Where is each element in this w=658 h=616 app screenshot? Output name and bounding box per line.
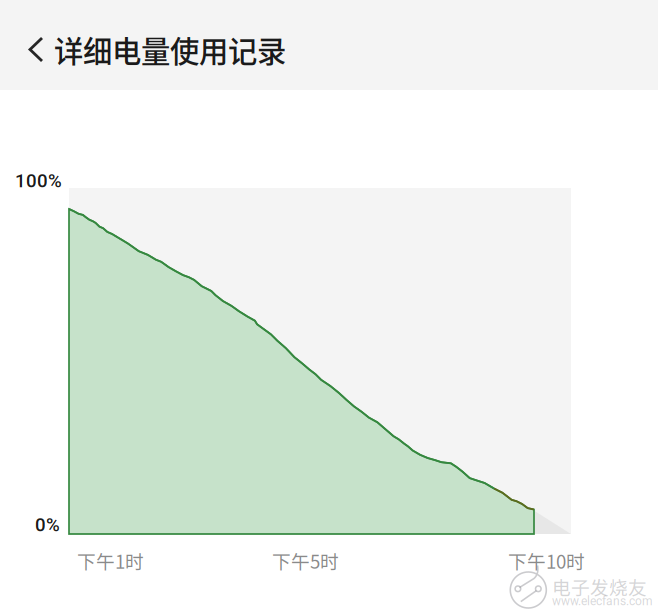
staticText: 详细电量使用记录 (54, 28, 286, 71)
staticText: 100% (15, 170, 62, 192)
staticText: 0% (35, 514, 60, 536)
staticText: www.elecfans.com (552, 594, 653, 608)
staticText: 下午1时 (77, 547, 144, 574)
staticText: 下午10时 (508, 547, 585, 574)
staticText: 电子发烧友 (552, 573, 647, 600)
button[interactable]: 详细电量使用记录 (0, 0, 658, 90)
staticText: 下午5时 (272, 547, 339, 574)
